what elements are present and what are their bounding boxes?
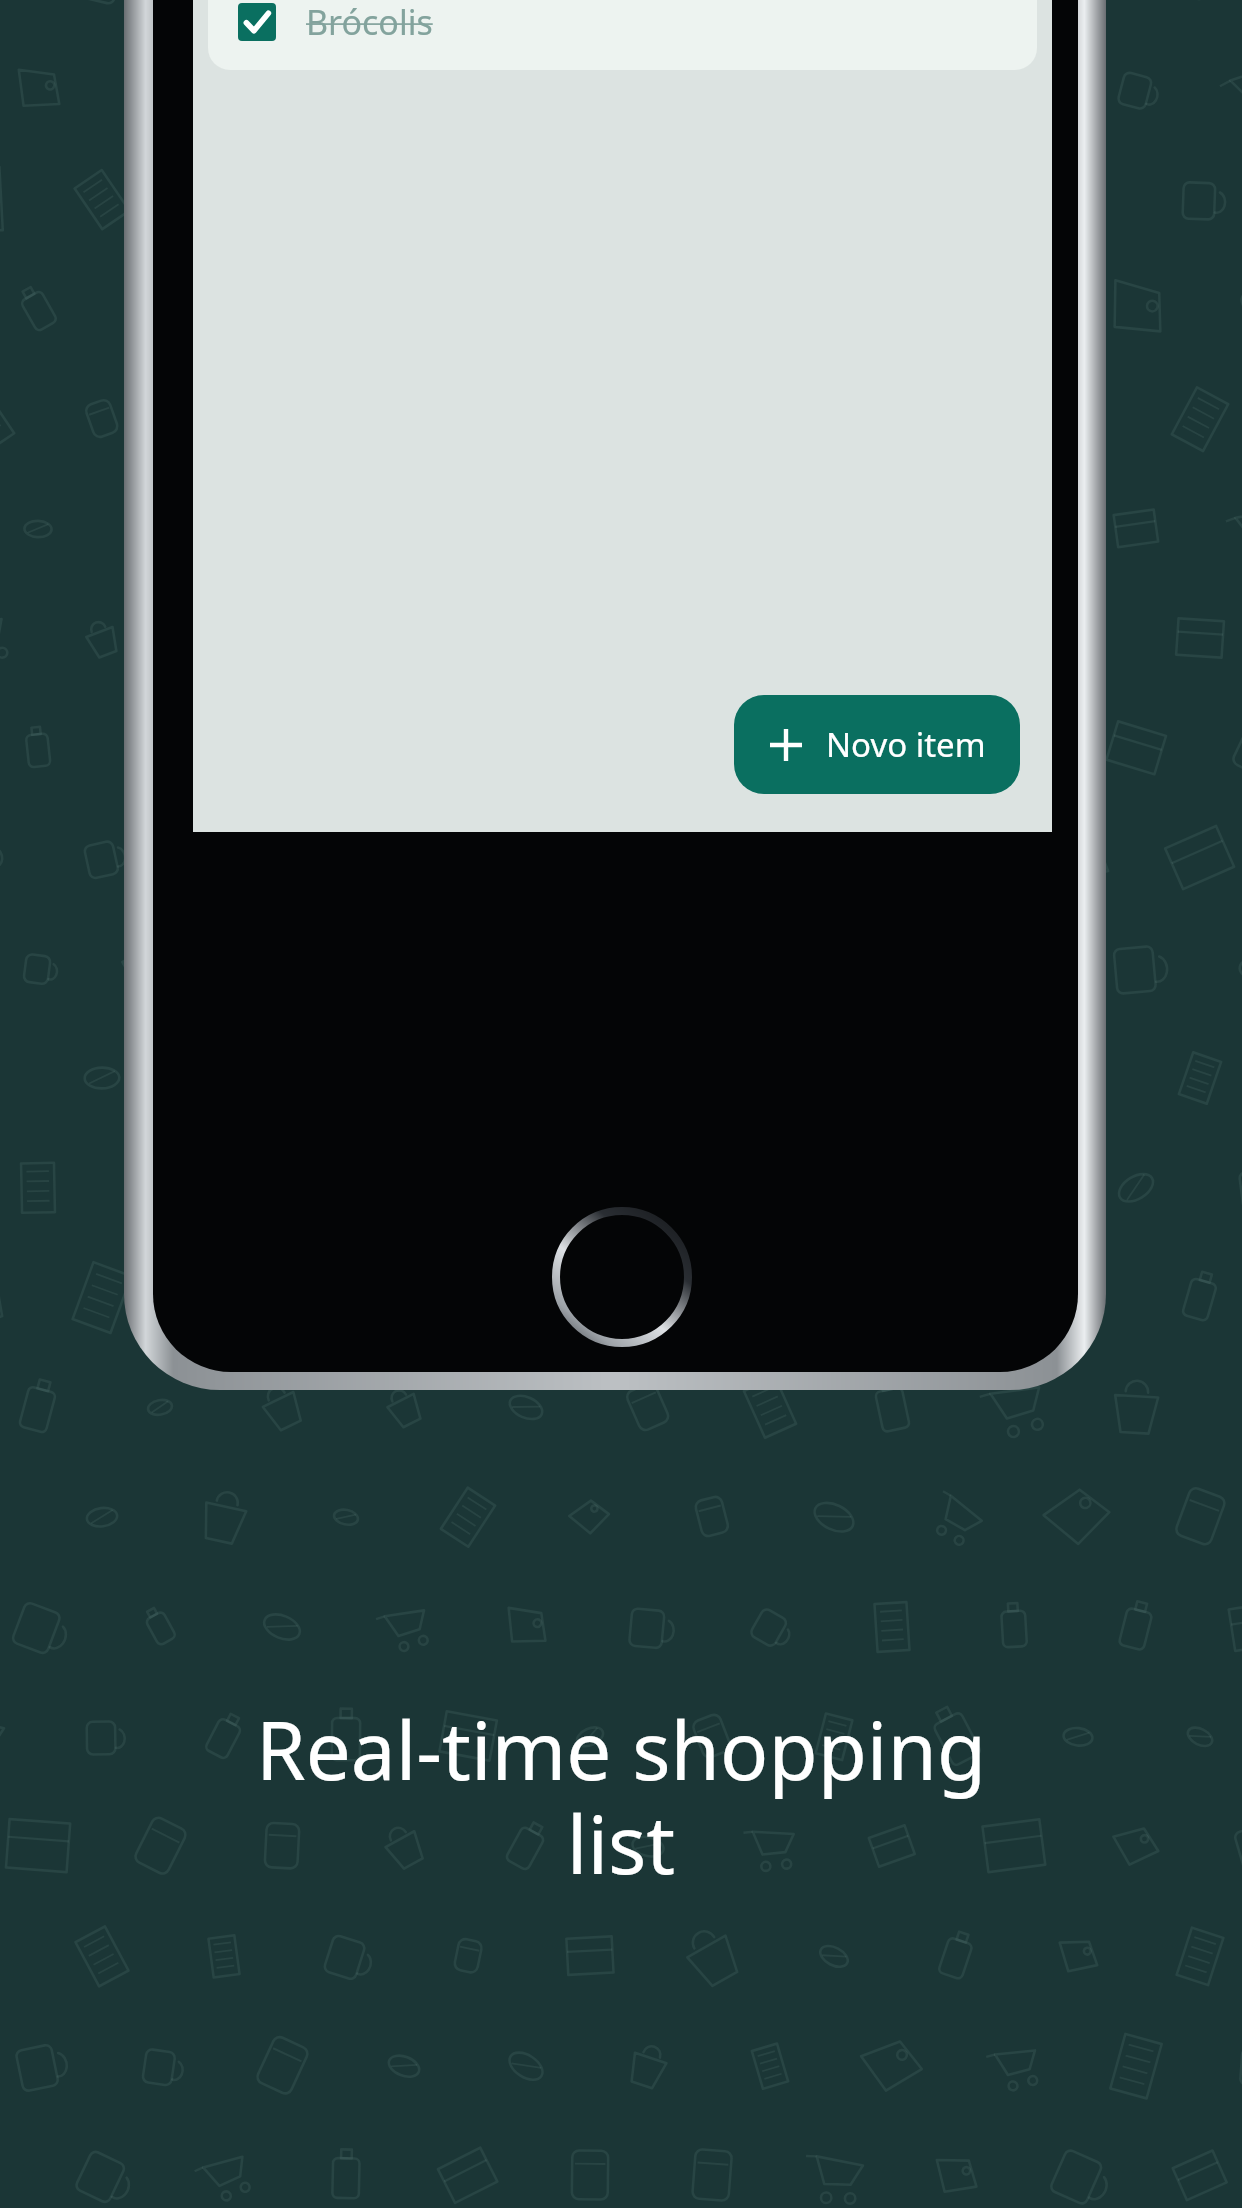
- staticText: Novo item: [826, 722, 986, 767]
- button[interactable]: Desmarcar Brócolis: [208, 0, 1037, 70]
- button[interactable]: Novo item: [734, 695, 1020, 794]
- staticText: Real-time shopping list: [200, 1694, 1042, 1897]
- other: Desmarcar Brócolis: [238, 3, 276, 41]
- staticText: Brócolis: [306, 0, 433, 45]
